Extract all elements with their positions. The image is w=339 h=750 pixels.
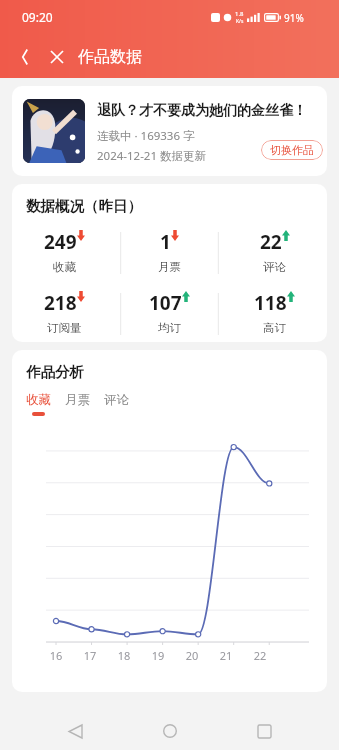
staticText: 作品数据 bbox=[78, 47, 142, 67]
staticText: 作品分析 bbox=[26, 363, 84, 381]
button[interactable]: 218 bbox=[12, 290, 117, 335]
staticText: 22 bbox=[251, 648, 269, 663]
staticText: 17 bbox=[81, 648, 99, 663]
staticText: 收藏 bbox=[53, 260, 76, 274]
staticText: 20 bbox=[183, 648, 201, 663]
staticText: 数据概况（昨日） bbox=[26, 197, 142, 215]
staticText: 订阅量 bbox=[47, 321, 82, 335]
staticText: 连载中 · 169336 字 bbox=[97, 128, 195, 144]
staticText: 评论 bbox=[104, 392, 129, 408]
staticText: 18 bbox=[115, 648, 133, 663]
button[interactable]: Back bbox=[10, 42, 40, 72]
button[interactable]: 1 bbox=[117, 229, 222, 274]
staticText: 1 bbox=[160, 229, 171, 255]
button[interactable]: Home bbox=[150, 712, 190, 750]
staticText: 2024-12-21 数据更新 bbox=[97, 148, 207, 164]
button[interactable]: 评论 bbox=[104, 392, 143, 412]
staticText: 249 bbox=[44, 229, 77, 255]
staticText: 218 bbox=[44, 290, 77, 316]
staticText: K/s bbox=[236, 18, 244, 25]
button[interactable]: 切换作品 bbox=[261, 140, 323, 160]
button[interactable]: 退队？才不要成为她们的金丝雀！ bbox=[12, 86, 327, 176]
staticText: 均订 bbox=[158, 321, 181, 335]
staticText: 高订 bbox=[263, 321, 286, 335]
button[interactable]: Back bbox=[55, 712, 95, 750]
staticText: 月票 bbox=[65, 392, 90, 408]
button[interactable]: Recents bbox=[244, 712, 284, 750]
button[interactable]: Close bbox=[42, 42, 72, 72]
staticText: 91% bbox=[284, 11, 304, 25]
staticText: 107 bbox=[149, 290, 182, 316]
staticText: 09:20 bbox=[22, 9, 53, 25]
staticText: 118 bbox=[254, 290, 287, 316]
button[interactable]: 月票 bbox=[65, 392, 104, 412]
staticText: 19 bbox=[149, 648, 167, 663]
staticText: 21 bbox=[217, 648, 235, 663]
button[interactable]: 107 bbox=[117, 290, 222, 335]
button[interactable]: 249 bbox=[12, 229, 117, 274]
button[interactable]: 118 bbox=[222, 290, 327, 335]
staticText: 退队？才不要成为她们的金丝雀！ bbox=[97, 102, 307, 120]
button[interactable]: 收藏 bbox=[26, 392, 65, 416]
staticText: 评论 bbox=[263, 260, 286, 274]
staticText: 切换作品 bbox=[270, 143, 314, 157]
staticText: 收藏 bbox=[26, 392, 51, 408]
staticText: 月票 bbox=[158, 260, 181, 274]
staticText: 22 bbox=[260, 229, 282, 255]
staticText: 1.8 bbox=[235, 10, 244, 18]
staticText: 16 bbox=[47, 648, 65, 663]
button[interactable]: 22 bbox=[222, 229, 327, 274]
